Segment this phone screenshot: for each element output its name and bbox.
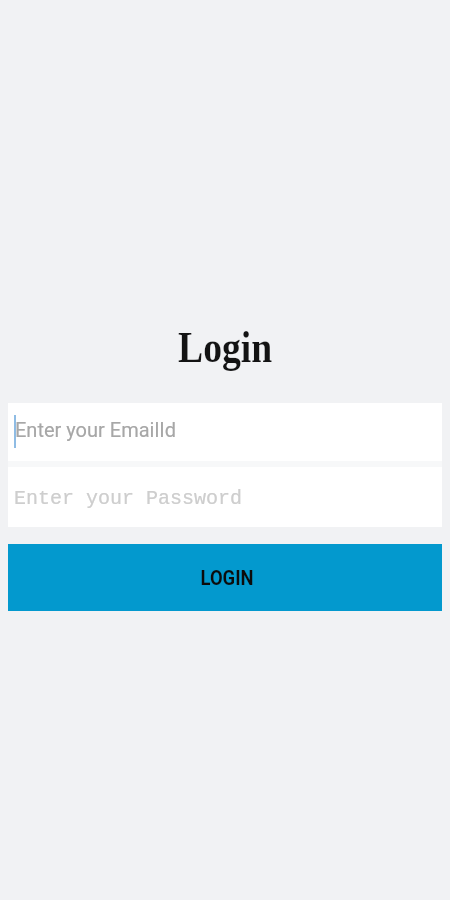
button[interactable]: LOGIN <box>8 544 442 611</box>
staticText: LOGIN <box>200 566 254 589</box>
button[interactable]: Enter your EmailId <box>8 403 442 461</box>
staticText: Login <box>178 323 273 372</box>
button[interactable]: Enter your Password <box>8 467 442 527</box>
staticText: Enter your Password <box>14 487 243 510</box>
staticText: Enter your EmailId <box>15 418 177 441</box>
